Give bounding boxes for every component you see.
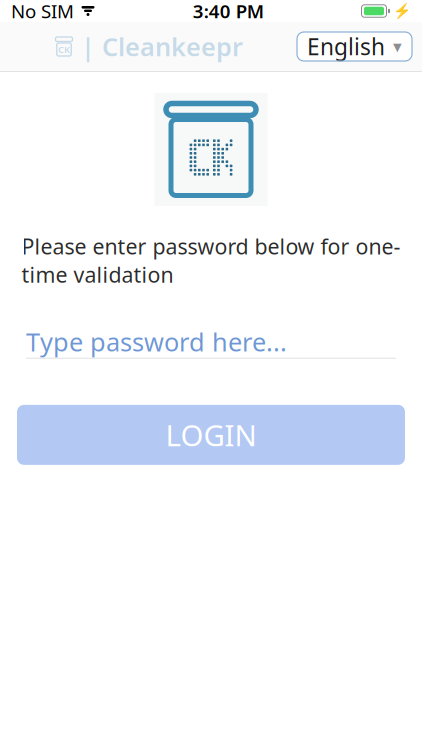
staticText: Type password here... <box>26 325 287 358</box>
staticText: CK <box>58 43 70 56</box>
staticText: English <box>307 31 385 61</box>
staticText: ⚡ <box>393 3 411 19</box>
button[interactable]: LOGIN <box>17 405 405 465</box>
staticText: No SIM <box>11 0 74 23</box>
staticText: | Cleankeepr <box>81 30 243 63</box>
button[interactable]: English <box>297 32 412 61</box>
button[interactable]: CK <box>54 30 243 63</box>
staticText: Please enter password below for one-time… <box>21 232 400 289</box>
staticText: LOGIN <box>165 415 256 454</box>
staticText: 3:40 PM <box>193 0 264 23</box>
staticText: ▾ <box>393 37 402 56</box>
